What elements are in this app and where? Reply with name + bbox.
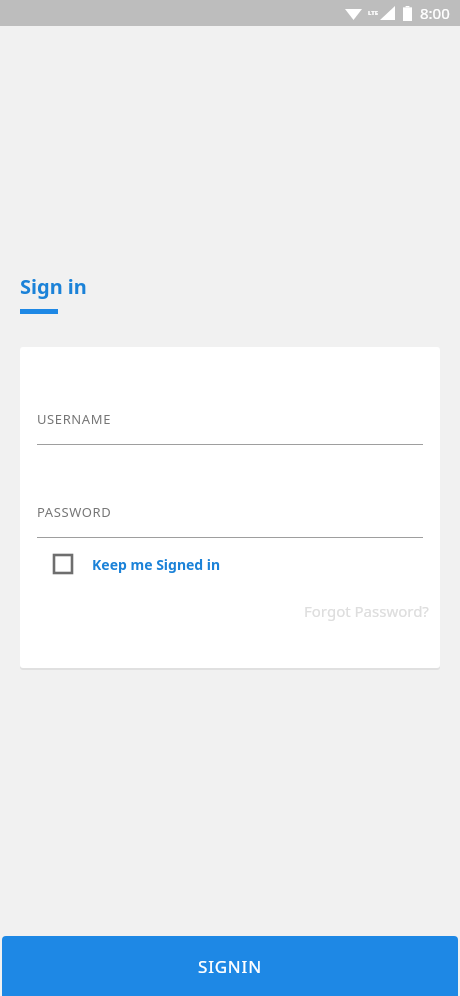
staticText: USERNAME (37, 410, 111, 428)
button[interactable]: USERNAME (37, 410, 423, 445)
button[interactable]: Keep me Signed in (53, 554, 221, 574)
button[interactable]: Forgot Password? (300, 597, 433, 625)
staticText: Forgot Password? (304, 601, 429, 621)
button[interactable]: SIGNIN (2, 936, 458, 996)
staticText: PASSWORD (37, 503, 112, 521)
staticText: Sign in (20, 273, 87, 300)
staticText: Keep me Signed in (92, 555, 221, 574)
staticText: SIGNIN (198, 955, 262, 978)
staticText: 8:00 (420, 3, 450, 23)
staticText: LTE (368, 9, 379, 17)
button[interactable]: PASSWORD (37, 503, 423, 538)
